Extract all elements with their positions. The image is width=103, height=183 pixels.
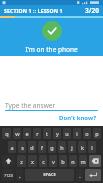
- button[interactable]: y: [53, 128, 61, 139]
- button[interactable]: a: [8, 141, 16, 153]
- staticText: k: [81, 144, 84, 151]
- staticText: s: [21, 144, 24, 151]
- button[interactable]: ?123: [2, 169, 14, 181]
- button[interactable]: Don't know?: [58, 113, 98, 123]
- staticText: x: [31, 158, 34, 165]
- button[interactable]: Backspace: [89, 155, 101, 167]
- button[interactable]: t: [43, 128, 51, 139]
- staticText: .: [79, 172, 81, 179]
- staticText: d: [30, 144, 34, 151]
- button[interactable]: b: [59, 155, 67, 167]
- staticText: ?123: [4, 173, 13, 178]
- staticText: h: [60, 144, 64, 151]
- staticText: ,: [19, 172, 21, 179]
- staticText: q: [5, 130, 9, 137]
- staticText: e: [25, 130, 29, 137]
- button[interactable]: w: [13, 128, 21, 139]
- button[interactable]: Correct: [42, 21, 62, 41]
- staticText: t: [46, 130, 48, 137]
- staticText: SECTION 1 :: LESSON 1: [4, 7, 63, 14]
- staticText: I'm on the phone: [25, 45, 78, 54]
- staticText: SPACE: [43, 172, 56, 178]
- staticText: b: [61, 158, 65, 165]
- staticText: r: [36, 130, 39, 137]
- staticText: m: [80, 158, 86, 165]
- button[interactable]: r: [33, 128, 41, 139]
- button[interactable]: Shift: [2, 155, 15, 167]
- button[interactable]: .: [76, 169, 83, 181]
- staticText: Type the answer: [5, 101, 56, 110]
- button[interactable]: k: [78, 141, 86, 153]
- staticText: n: [71, 158, 75, 165]
- button[interactable]: m: [79, 155, 87, 167]
- button[interactable]: ,: [16, 169, 23, 181]
- button[interactable]: v: [49, 155, 57, 167]
- button[interactable]: l: [88, 141, 96, 153]
- staticText: z: [20, 158, 23, 165]
- staticText: w: [15, 130, 20, 137]
- staticText: i: [76, 130, 78, 137]
- staticText: Don't know?: [59, 114, 97, 122]
- staticText: u: [65, 130, 69, 137]
- button[interactable]: q: [2, 128, 11, 139]
- staticText: a: [10, 144, 14, 151]
- button[interactable]: SPACE: [25, 169, 74, 181]
- staticText: o: [85, 130, 89, 137]
- staticText: g: [50, 144, 54, 151]
- button[interactable]: o: [83, 128, 91, 139]
- button[interactable]: g: [48, 141, 56, 153]
- staticText: j: [71, 144, 73, 151]
- button[interactable]: Type the answer: [5, 100, 98, 110]
- staticText: 3/20: [85, 6, 99, 15]
- staticText: v: [52, 158, 55, 165]
- staticText: p: [95, 130, 99, 137]
- button[interactable]: x: [28, 155, 37, 167]
- staticText: l: [91, 144, 93, 151]
- button[interactable]: i: [73, 128, 81, 139]
- button[interactable]: f: [38, 141, 46, 153]
- staticText: y: [56, 130, 59, 137]
- button[interactable]: j: [68, 141, 76, 153]
- button[interactable]: e: [23, 128, 31, 139]
- button[interactable]: u: [63, 128, 71, 139]
- button[interactable]: Enter: [85, 169, 101, 181]
- staticText: c: [42, 158, 45, 165]
- button[interactable]: p: [93, 128, 101, 139]
- staticText: f: [41, 144, 43, 151]
- button[interactable]: c: [39, 155, 47, 167]
- button[interactable]: n: [69, 155, 77, 167]
- button[interactable]: z: [17, 155, 26, 167]
- button[interactable]: h: [58, 141, 66, 153]
- button[interactable]: s: [18, 141, 26, 153]
- button[interactable]: d: [28, 141, 36, 153]
